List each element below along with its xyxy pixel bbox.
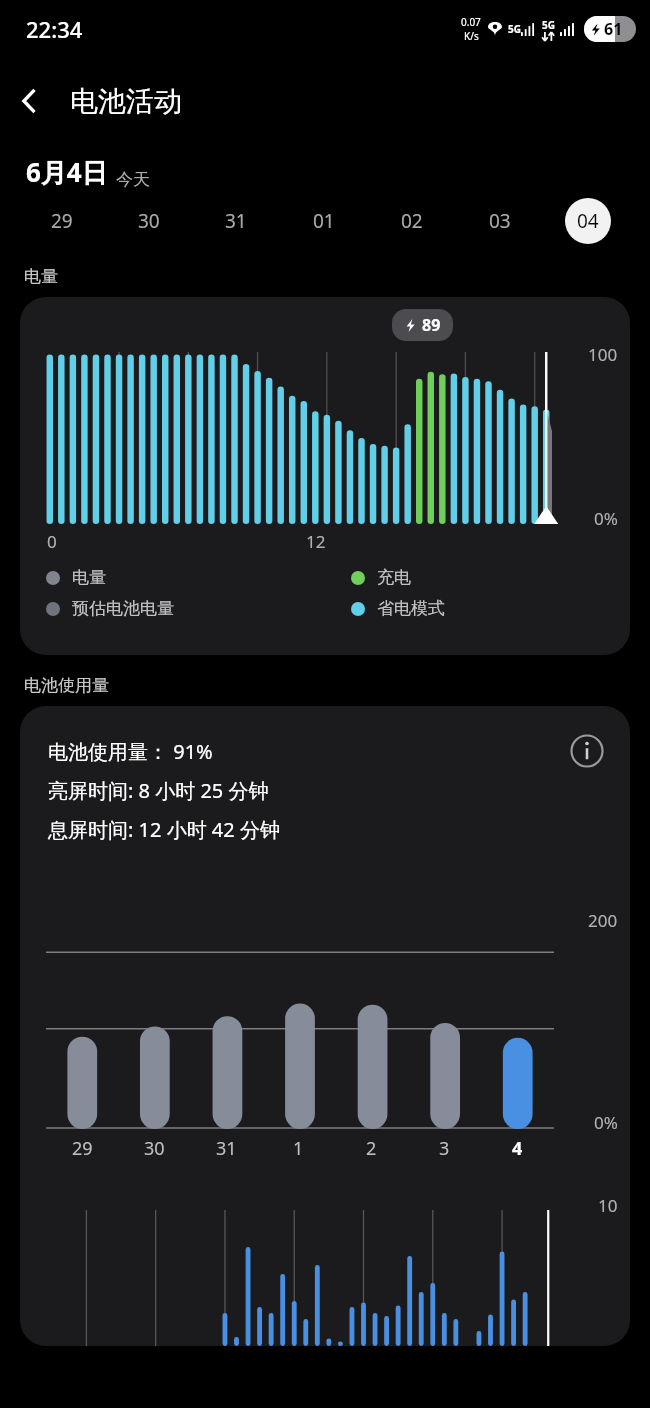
- staticText: 02: [401, 208, 423, 234]
- staticText: 0%: [594, 507, 618, 530]
- staticText: 22:34: [26, 14, 83, 44]
- button[interactable]: Back: [0, 71, 60, 131]
- staticText: 3: [439, 1136, 450, 1161]
- staticText: 31: [216, 1136, 237, 1161]
- staticText: K/s: [464, 29, 479, 43]
- staticText: 0%: [594, 1111, 618, 1134]
- staticText: 30: [144, 1136, 165, 1161]
- button[interactable]: 03: [456, 190, 544, 252]
- staticText: 29: [51, 208, 73, 234]
- staticText: 电量: [24, 266, 58, 287]
- button[interactable]: 04: [544, 190, 632, 252]
- staticText: 12: [306, 530, 326, 553]
- staticText: 2: [366, 1136, 377, 1161]
- staticText: 04: [577, 208, 599, 234]
- staticText: 预估电池电量: [72, 598, 174, 619]
- button[interactable]: 31: [192, 190, 280, 252]
- staticText: 6月4日: [26, 154, 108, 190]
- button[interactable]: 29: [18, 190, 105, 252]
- staticText: 电池活动: [70, 84, 182, 119]
- staticText: 89: [422, 314, 441, 336]
- staticText: 5G: [542, 18, 555, 32]
- staticText: 今天: [116, 169, 150, 190]
- staticText: 30: [138, 208, 160, 234]
- button[interactable]: Info: [564, 728, 610, 774]
- staticText: 1: [293, 1136, 304, 1161]
- staticText: 100: [588, 343, 618, 366]
- button[interactable]: 30: [105, 190, 192, 252]
- staticText: 4: [512, 1136, 523, 1161]
- staticText: 电池使用量: [24, 675, 109, 696]
- staticText: 29: [72, 1136, 93, 1161]
- button[interactable]: 电池使用量： 91%: [20, 706, 630, 1346]
- staticText: 亮屏时间: 8 小时 25 分钟: [48, 777, 269, 804]
- staticText: 电量: [72, 567, 106, 588]
- staticText: 电池使用量： 91%: [48, 738, 213, 765]
- staticText: 充电: [377, 567, 411, 588]
- staticText: 200: [588, 909, 618, 932]
- staticText: 61: [604, 18, 623, 40]
- staticText: 省电模式: [377, 598, 445, 619]
- staticText: 5G: [508, 22, 521, 36]
- button[interactable]: 02: [368, 190, 456, 252]
- button[interactable]: 89: [20, 297, 630, 655]
- staticText: 01: [313, 208, 335, 234]
- staticText: 息屏时间: 12 小时 42 分钟: [48, 816, 280, 843]
- staticText: 31: [225, 208, 247, 234]
- staticText: 03: [489, 208, 511, 234]
- staticText: 0.07: [461, 15, 481, 29]
- button[interactable]: 01: [280, 190, 368, 252]
- staticText: 10: [598, 1194, 618, 1217]
- staticText: 0: [47, 530, 57, 553]
